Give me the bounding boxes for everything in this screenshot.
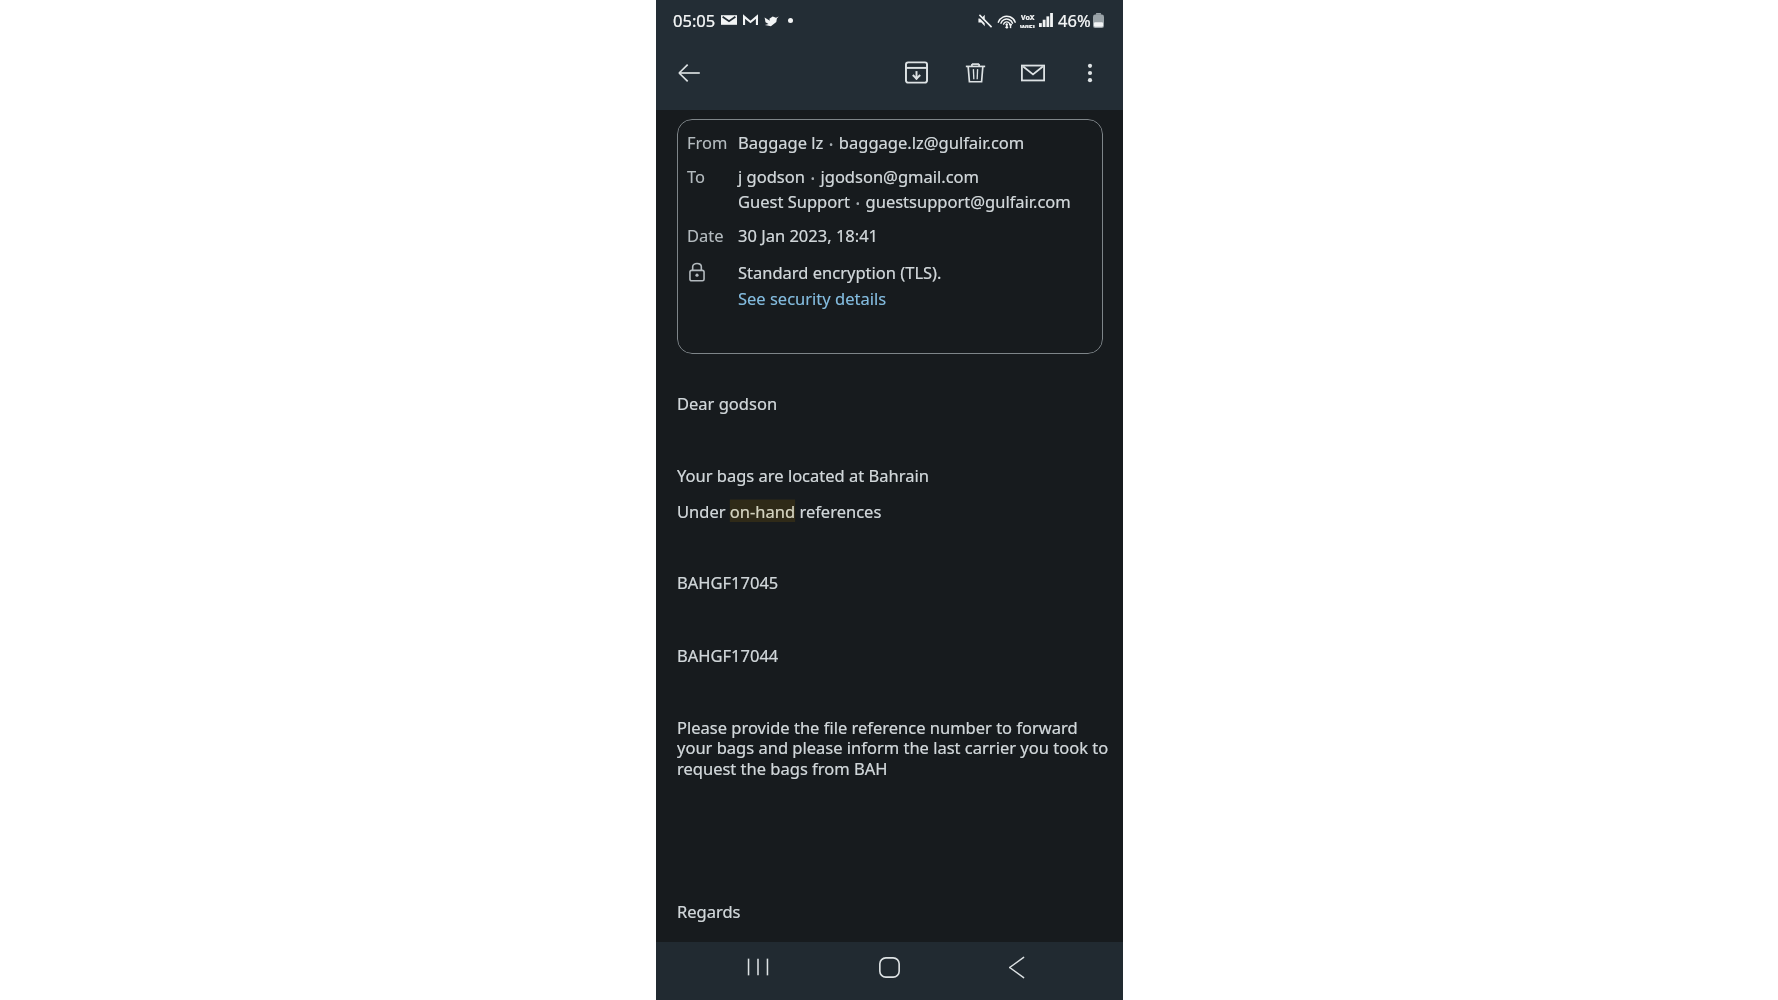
staticText: BAHGF17044	[677, 644, 779, 666]
staticText: Dear godson	[677, 392, 778, 414]
staticText: BAHGF17045	[677, 571, 779, 593]
staticText: WiFi1	[1020, 23, 1036, 28]
staticText: 46%	[1058, 9, 1091, 31]
button[interactable]: See security details	[738, 287, 887, 309]
staticText: VoX	[1021, 13, 1035, 23]
staticText: Please provide the file reference number…	[677, 716, 1109, 780]
staticText: 05:05	[673, 9, 716, 31]
staticText: Your bags are located at Bahrain	[677, 464, 929, 486]
staticText: Regards	[677, 900, 741, 922]
button[interactable]: More options	[1067, 50, 1112, 95]
staticText: Guest Support • guestsupport@gulfair.com	[738, 190, 1071, 212]
button[interactable]: Back	[989, 938, 1044, 996]
staticText: Standard encryption (TLS).	[738, 261, 942, 283]
button[interactable]: Navigate up	[666, 50, 711, 95]
staticText: Under on-hand references	[677, 500, 882, 522]
button[interactable]: From	[677, 119, 1103, 354]
staticText: From	[687, 131, 728, 153]
staticText: Date	[687, 224, 724, 246]
staticText: Baggage lz • baggage.lz@gulfair.com	[738, 131, 1025, 153]
staticText: 30 Jan 2023, 18:41	[738, 224, 879, 246]
staticText: See security details	[738, 287, 887, 309]
staticText: j godson • jgodson@gmail.com	[738, 165, 980, 187]
button[interactable]: Archive	[894, 50, 939, 95]
staticText: To	[687, 165, 706, 187]
button[interactable]: Mark as unread	[1010, 50, 1055, 95]
button[interactable]: Recent apps	[730, 938, 785, 996]
button[interactable]: Home	[862, 938, 917, 996]
button[interactable]: Delete	[953, 50, 998, 95]
